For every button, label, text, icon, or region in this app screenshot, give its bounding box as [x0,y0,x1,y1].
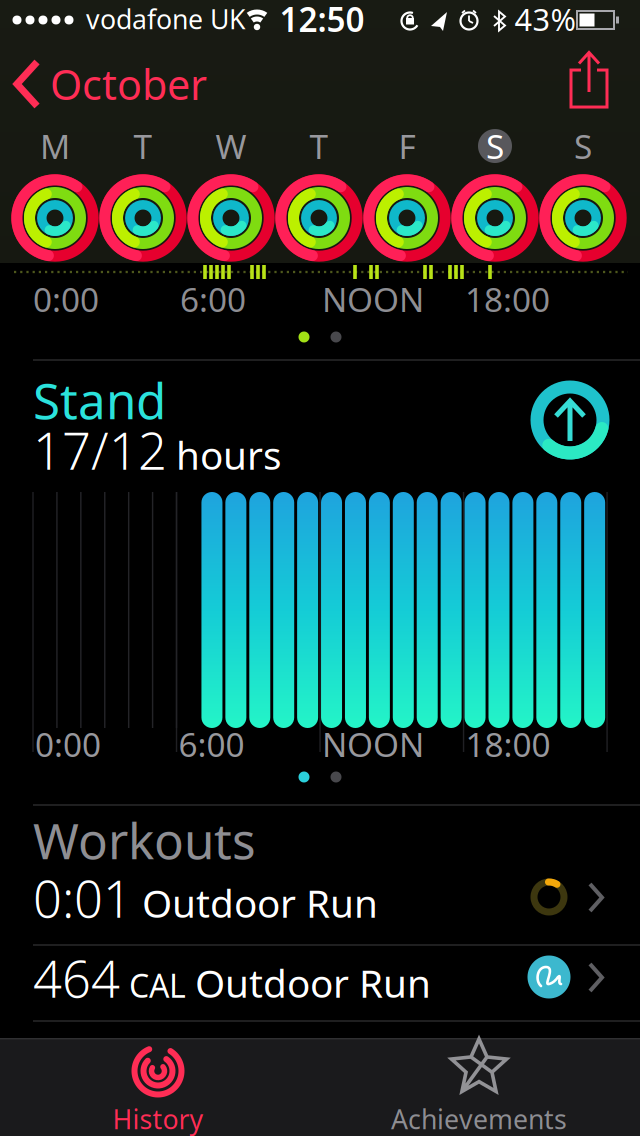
button[interactable]: History [0,1039,320,1136]
staticText: 464 [33,944,120,1012]
staticText: CAL [129,964,186,1006]
staticText: T [309,124,328,168]
staticText: 6:00 [178,722,244,766]
staticText: 17/12 [33,416,167,484]
staticText: History [112,1101,203,1136]
button[interactable]: Tuesday activity [99,174,187,262]
staticText: 0:00 [33,277,99,321]
button[interactable]: Achievements [320,1039,640,1136]
staticText: October [50,57,207,111]
button[interactable]: Workout, 464 calories, Outdoor Run [0,946,640,1020]
staticText: T [133,124,152,168]
staticText: 18:00 [465,277,550,321]
staticText: Outdoor Run [142,877,378,928]
staticText: NOON [322,722,424,766]
button[interactable]: Stand ring [524,374,616,466]
button[interactable]: Workout, 0:01, Outdoor Run [0,862,640,944]
staticText: Outdoor Run [195,957,431,1008]
staticText: Workouts [33,807,256,873]
button[interactable]: Friday activity [363,174,451,262]
staticText: 43% [514,0,575,39]
staticText: 0:01 [33,864,132,932]
staticText: S [574,124,592,168]
button[interactable]: Sunday activity [539,174,627,262]
staticText: Stand [33,367,166,433]
staticText: 12:50 [279,0,364,41]
staticText: F [398,124,415,168]
button[interactable]: Share [556,44,626,118]
staticText: 18:00 [466,722,551,766]
staticText: 0:00 [35,722,101,766]
button[interactable]: Back, October [10,54,210,114]
staticText: S [486,124,504,168]
staticText: M [40,124,70,168]
staticText: vodafone UK [86,1,246,37]
button[interactable]: Thursday activity [275,174,363,262]
staticText: hours [176,429,282,480]
button[interactable]: Saturday activity [451,174,539,262]
staticText: W [215,124,246,168]
button[interactable]: Wednesday activity [187,174,275,262]
staticText: 6:00 [180,277,246,321]
button[interactable]: Monday activity [11,174,99,262]
staticText: NOON [322,277,424,321]
staticText: Achievements [391,1101,567,1136]
